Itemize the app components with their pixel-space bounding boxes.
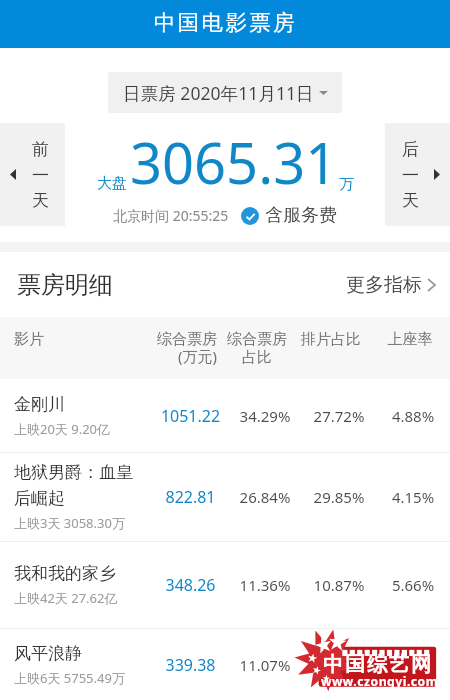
staticText: 上座率	[373, 330, 447, 349]
staticText: 票房明细	[17, 270, 113, 300]
staticText: 11.36%	[228, 575, 302, 595]
staticText: 4.88%	[376, 406, 450, 426]
staticText: 综合票房 占比	[220, 330, 294, 366]
staticText: 822.81	[153, 486, 228, 508]
staticText	[376, 655, 450, 675]
staticText: 34.29%	[228, 406, 302, 426]
staticText: 综合票房 (万元)	[142, 330, 217, 367]
staticText: 上映6天 5755.49万	[14, 669, 125, 687]
button[interactable]: 金刚川	[0, 379, 450, 452]
staticText: 3065.31	[130, 124, 338, 200]
staticText: 中国综艺网	[322, 652, 432, 677]
button[interactable]: 我和我的家乡	[0, 542, 450, 628]
staticText: www.czongyi.com	[321, 673, 439, 690]
staticText: 4.15%	[376, 487, 450, 507]
staticText: 中国电影票房	[154, 9, 297, 36]
staticText: 后 一 天	[402, 139, 419, 211]
staticText: 上映42天 27.62亿	[14, 589, 118, 607]
staticText: 排片占比	[294, 330, 368, 349]
staticText: 地狱男爵：血皇 后崛起	[14, 462, 133, 509]
button[interactable]: 地狱男爵：血皇 后崛起	[0, 453, 450, 541]
button[interactable]: 票房明细	[0, 252, 450, 317]
staticText: 26.84%	[228, 487, 302, 507]
staticText: 金刚川	[14, 394, 65, 415]
staticText: 含服务费	[265, 204, 337, 227]
staticText: 29.85%	[302, 487, 376, 507]
staticText: 348.26	[153, 574, 228, 596]
staticText: 北京时间 20:55:25	[113, 206, 229, 225]
staticText: 27.72%	[302, 406, 376, 426]
staticText: 上映3天 3058.30万	[14, 514, 125, 532]
staticText: 5.66%	[376, 575, 450, 595]
staticText: 更多指标	[346, 273, 422, 297]
staticText: 影片	[14, 330, 44, 349]
staticText: 前 一 天	[32, 139, 49, 211]
button[interactable]: 前一天	[0, 123, 65, 226]
staticText: 日票房 2020年11月11日	[123, 81, 314, 105]
button[interactable]: 日票房 2020年11月11日	[108, 72, 342, 113]
staticText: 10.87%	[302, 575, 376, 595]
staticText: 万	[339, 175, 354, 194]
button[interactable]: 风平浪静	[0, 629, 450, 700]
staticText: 我和我的家乡	[14, 563, 116, 584]
staticText: 风平浪静	[14, 643, 82, 664]
staticText: 上映20天 9.20亿	[14, 420, 111, 438]
staticText: 11.07%	[228, 655, 302, 675]
button[interactable]: 后一天	[385, 123, 450, 226]
button[interactable]: 更多指标	[346, 273, 450, 297]
staticText	[302, 655, 376, 675]
staticText: 1051.22	[153, 405, 228, 427]
staticText: 339.38	[153, 654, 228, 676]
staticText: 大盘	[97, 174, 127, 193]
